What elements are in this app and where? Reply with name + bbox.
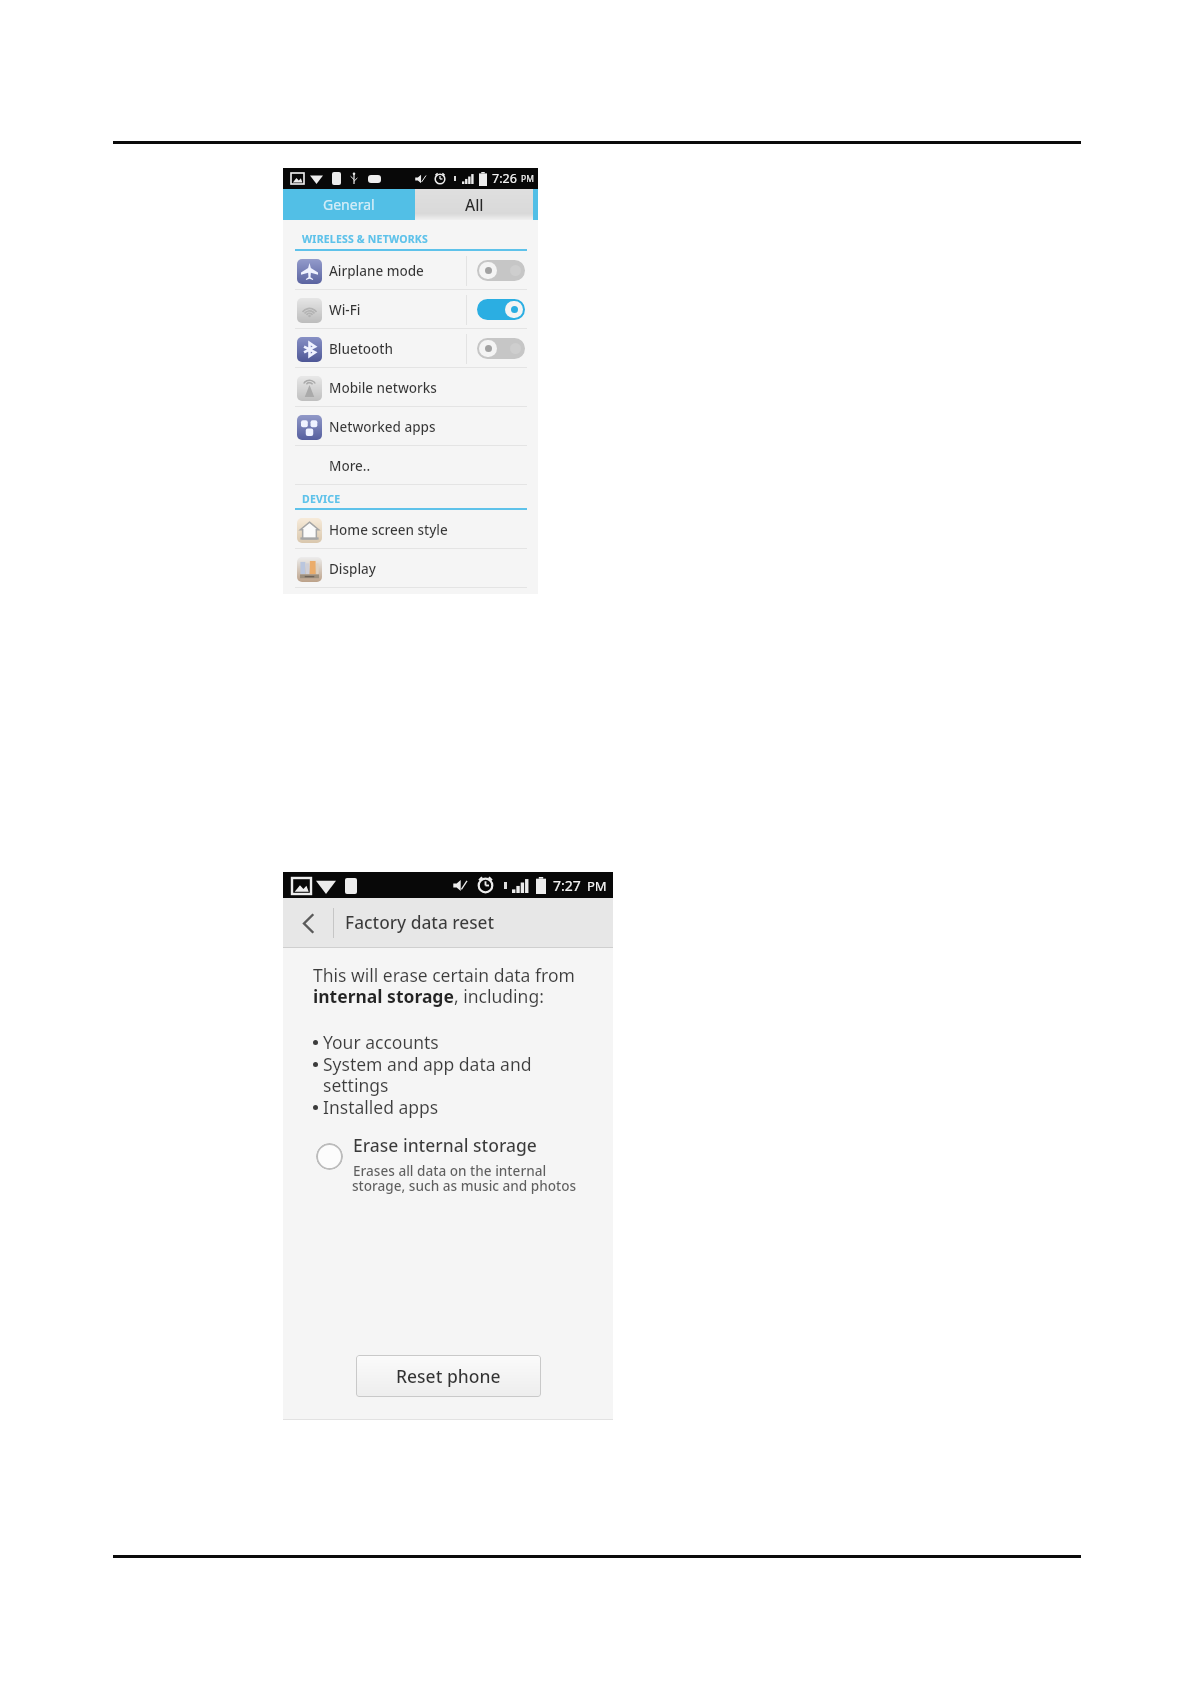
staticText: Home screen style: [329, 521, 448, 539]
staticText: Reset phone: [396, 1364, 501, 1388]
button[interactable]: All: [415, 189, 533, 220]
button[interactable]: Networked apps: [283, 407, 538, 446]
button[interactable]: Toggle on: [477, 299, 525, 320]
staticText: storage, such as music and photos: [352, 1176, 577, 1195]
staticText: General: [323, 195, 375, 214]
staticText: DEVICE: [302, 492, 341, 506]
staticText: More..: [329, 457, 371, 475]
staticText: Airplane mode: [329, 262, 424, 280]
staticText: This will erase certain data from: [313, 963, 575, 987]
button[interactable]: Bluetooth: [283, 329, 538, 368]
button[interactable]: Back: [283, 898, 333, 948]
staticText: System and app data and: [323, 1052, 532, 1076]
button[interactable]: Toggle off: [477, 338, 525, 359]
staticText: Mobile networks: [329, 379, 437, 397]
staticText: 7:26: [492, 170, 517, 187]
staticText: , including:: [454, 984, 544, 1008]
staticText: PM: [521, 173, 534, 185]
staticText: PM: [587, 877, 607, 895]
staticText: All: [465, 194, 484, 215]
staticText: Your accounts: [323, 1030, 439, 1054]
button[interactable]: Mobile networks: [283, 368, 538, 407]
staticText: WIRELESS & NETWORKS: [302, 232, 428, 246]
button[interactable]: General: [283, 189, 415, 220]
button[interactable]: Reset phone: [356, 1355, 541, 1397]
button[interactable]: Display: [283, 549, 538, 588]
staticText: Factory data reset: [345, 911, 495, 935]
staticText: 7:27: [553, 876, 581, 895]
button[interactable]: More..: [283, 446, 538, 485]
staticText: Wi-Fi: [329, 301, 361, 319]
button[interactable]: Toggle off: [477, 260, 525, 281]
staticText: Bluetooth: [329, 340, 393, 358]
staticText: Networked apps: [329, 418, 436, 436]
staticText: Installed apps: [323, 1095, 439, 1119]
staticText: Display: [329, 560, 376, 578]
button[interactable]: Airplane mode: [283, 251, 538, 290]
button[interactable]: Wi-Fi: [283, 290, 538, 329]
staticText: settings: [323, 1073, 389, 1097]
button[interactable]: Home screen style: [283, 510, 538, 549]
button[interactable]: Erase internal storage: [316, 1143, 343, 1170]
staticText: Erases all data on the internal: [353, 1161, 547, 1180]
staticText: Erase internal storage: [353, 1133, 537, 1157]
staticText: internal storage: [313, 984, 454, 1008]
